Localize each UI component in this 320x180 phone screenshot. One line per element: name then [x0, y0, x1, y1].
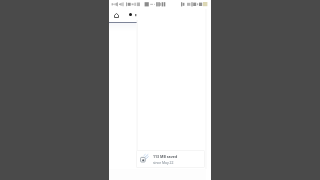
button[interactable]: Home: [112, 11, 121, 20]
button[interactable]: 113 MB saved: [136, 150, 205, 168]
staticText: since May 22: [153, 160, 174, 165]
button[interactable]: Tabs: [126, 10, 135, 19]
staticText: 113 MB saved: [153, 154, 178, 159]
